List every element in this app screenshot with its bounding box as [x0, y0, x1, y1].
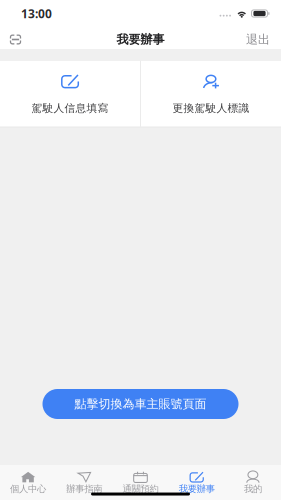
staticText: 13:00 — [21, 5, 52, 21]
button[interactable]: 辦事指南 — [56, 465, 112, 500]
button[interactable]: 退出 — [237, 28, 279, 50]
staticText: 更換駕駛人標識 — [172, 102, 249, 115]
staticText: 退出 — [246, 32, 270, 47]
staticText: 辦事指南 — [66, 483, 102, 495]
staticText: 我的 — [244, 483, 262, 495]
staticText: 駕駛人信息填寫 — [31, 102, 108, 115]
button[interactable]: 通關預約 — [112, 465, 169, 500]
staticText: 點擊切換為車主賬號頁面 — [74, 397, 206, 411]
button[interactable]: 我要辦事 — [169, 465, 225, 500]
button[interactable]: 更換駕駛人標識 — [141, 61, 281, 127]
button[interactable]: 駕駛人信息填寫 — [0, 61, 140, 127]
staticText: 個人中心 — [10, 483, 46, 495]
button[interactable]: Scan document — [5, 28, 26, 50]
button[interactable]: 點擊切換為車主賬號頁面 — [42, 389, 238, 419]
staticText: 通關預約 — [122, 483, 158, 495]
staticText: 我要辦事 — [179, 483, 215, 495]
staticText: 我要辦事 — [116, 32, 164, 47]
button[interactable]: 個人中心 — [0, 465, 56, 500]
button[interactable]: 我的 — [225, 465, 281, 500]
